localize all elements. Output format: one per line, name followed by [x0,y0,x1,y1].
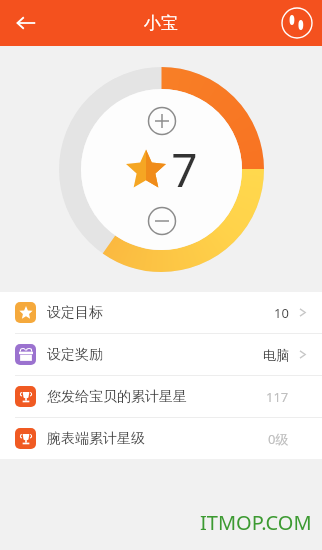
staticText: 设定目标 [47,304,103,322]
button[interactable]: Remove star [147,206,177,236]
button[interactable]: 设定奖励 [0,334,322,375]
button[interactable]: 您发给宝贝的累计星星 [0,376,322,417]
staticText: 您发给宝贝的累计星星 [47,388,187,406]
staticText: 小宝 [144,13,178,34]
staticText: 腕表端累计星级 [47,430,145,448]
staticText: 设定奖励 [47,346,103,364]
button[interactable]: 腕表端累计星级 [0,418,322,459]
button[interactable]: 设定目标 [0,292,322,333]
staticText: 117 [266,388,289,406]
staticText: 7 [171,138,198,201]
button[interactable]: Steps [281,7,313,39]
button[interactable]: Add star [147,106,177,136]
button[interactable]: Back [6,3,46,43]
staticText: 电脑 [263,347,289,363]
staticText: ITMOP.COM [200,509,312,536]
staticText: 0级 [268,430,289,448]
staticText: 10 [274,304,289,322]
